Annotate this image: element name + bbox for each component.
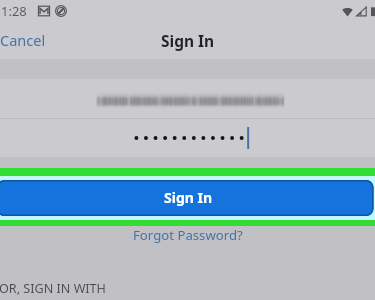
staticText: Sign In xyxy=(164,188,213,207)
staticText: 1:28 xyxy=(1,2,27,20)
staticText: Sign In xyxy=(161,30,215,51)
other: Do not disturb xyxy=(55,5,67,17)
staticText: Cancel xyxy=(0,30,46,50)
other: Battery xyxy=(371,6,375,17)
staticText: OR, SIGN IN WITH xyxy=(0,280,106,297)
other: Wi-Fi xyxy=(342,6,353,17)
staticText: Forgot Password? xyxy=(133,226,243,244)
button[interactable] xyxy=(0,79,375,118)
button[interactable]: Sign In xyxy=(0,176,375,220)
other: Mobile signal xyxy=(356,6,367,17)
button[interactable]: Forgot Password? xyxy=(133,226,243,244)
button[interactable]: Cancel xyxy=(0,30,46,50)
button[interactable] xyxy=(0,119,375,157)
other: Gmail xyxy=(38,5,50,17)
